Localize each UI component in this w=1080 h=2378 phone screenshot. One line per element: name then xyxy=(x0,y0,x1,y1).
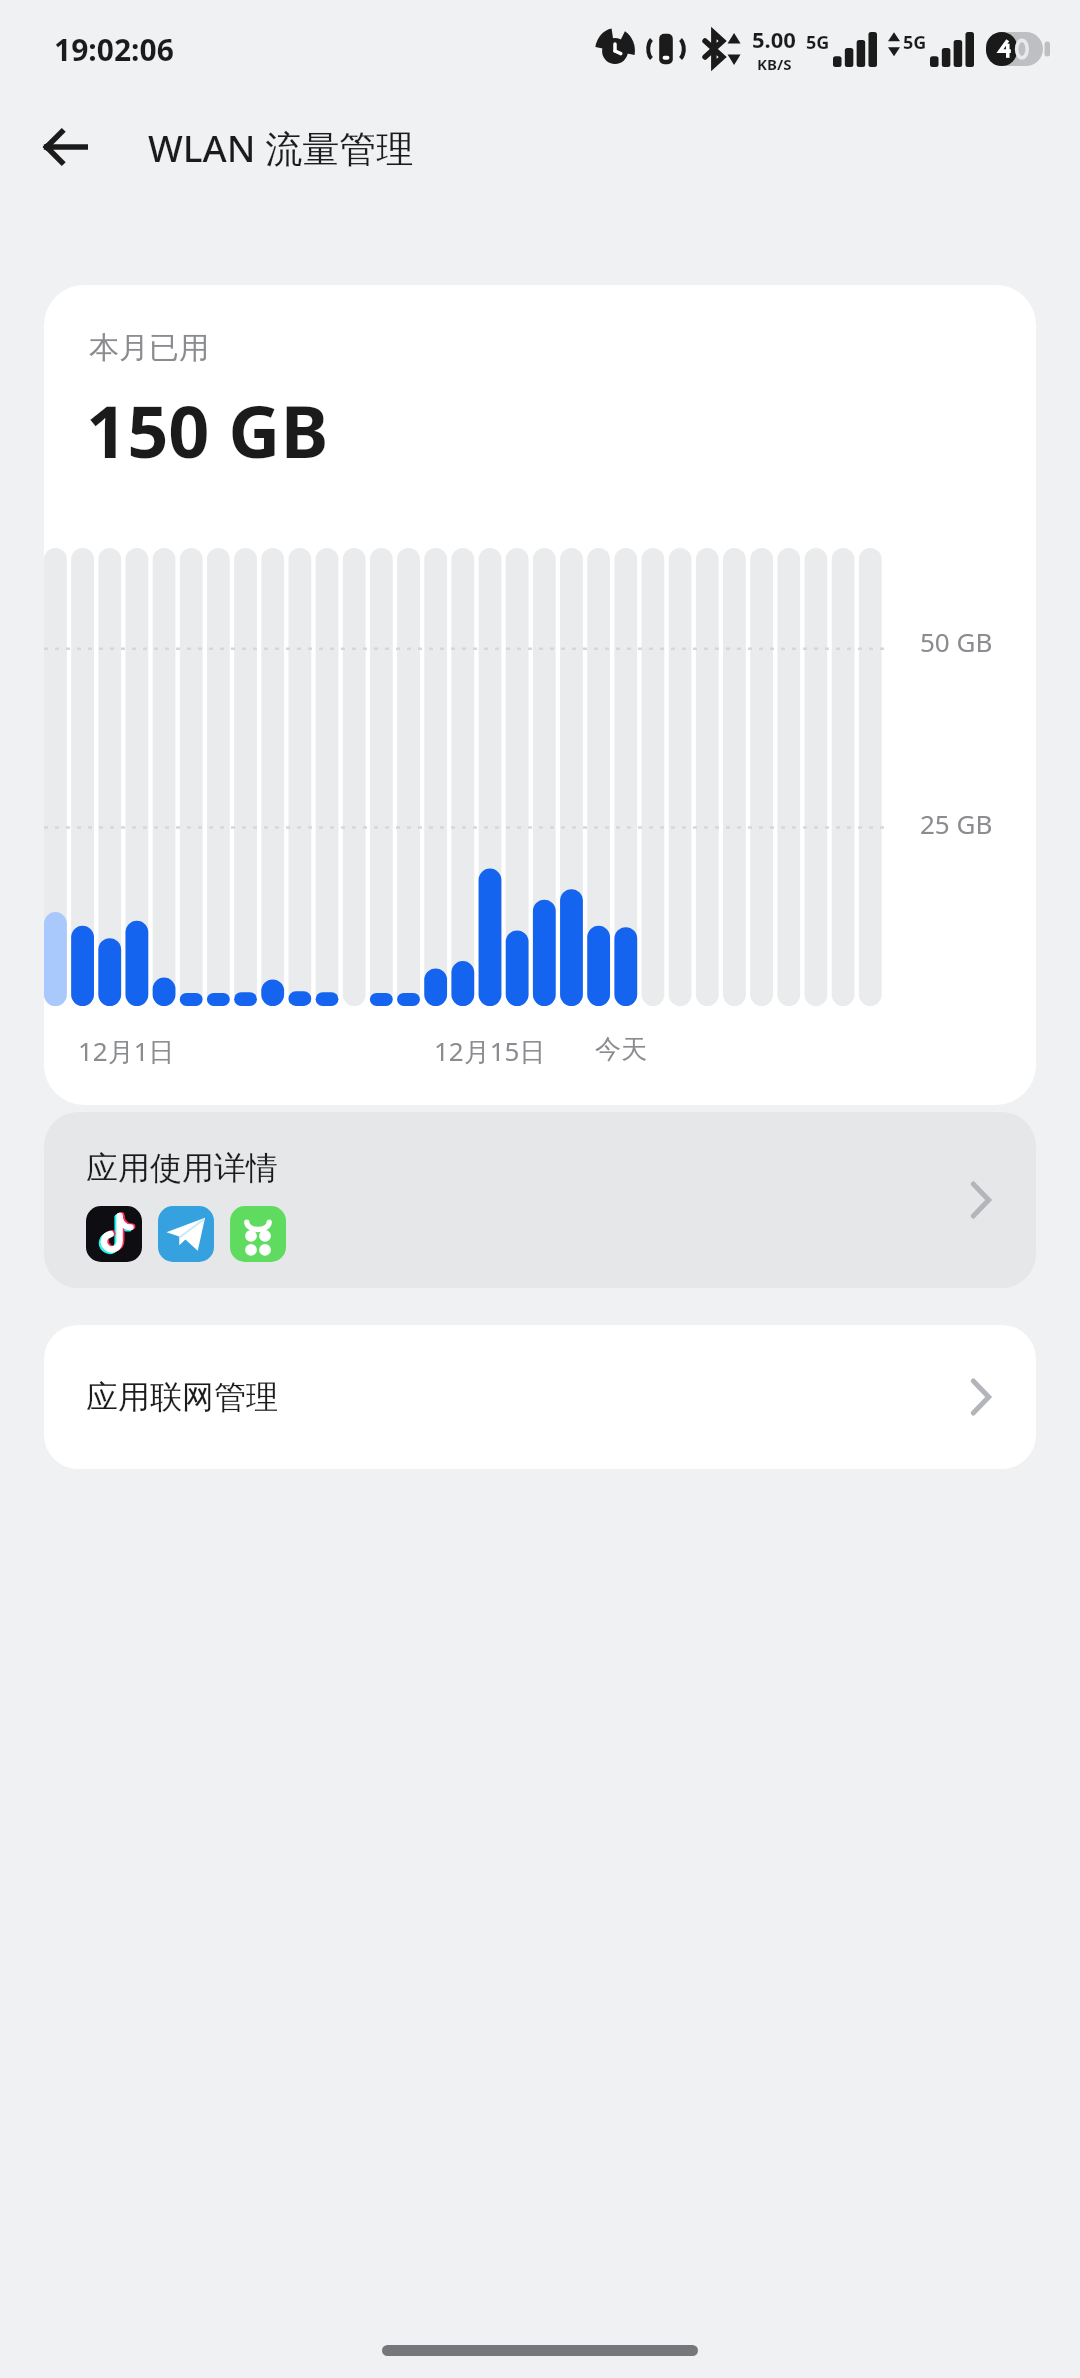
staticText: 5.00 xyxy=(752,24,796,54)
button[interactable]: 应用联网管理 xyxy=(44,1325,1036,1469)
staticText: 12月1日 xyxy=(78,1033,175,1069)
staticText: 应用使用详情 xyxy=(86,1148,278,1188)
staticText: 12月15日 xyxy=(434,1033,546,1069)
staticText: 25 GB xyxy=(920,806,993,841)
staticText: 本月已用 xyxy=(89,329,209,367)
staticText: 5G xyxy=(903,30,927,55)
button[interactable]: Back xyxy=(22,104,108,190)
staticText: 19:02:06 xyxy=(54,29,174,70)
staticText: 150 GB xyxy=(86,381,329,479)
staticText: 50 GB xyxy=(920,624,993,659)
staticText: 应用联网管理 xyxy=(86,1377,278,1417)
staticText: 5G xyxy=(806,30,830,55)
staticText: WLAN 流量管理 xyxy=(148,122,414,173)
button[interactable]: 应用使用详情 xyxy=(44,1112,1036,1288)
staticText: 今天 xyxy=(595,1033,647,1066)
staticText: KB/S xyxy=(757,54,792,74)
